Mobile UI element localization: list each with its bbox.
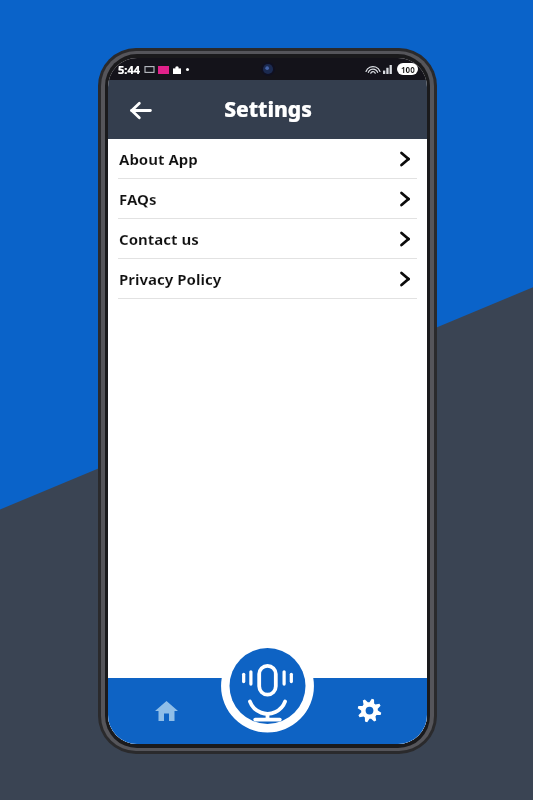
button[interactable]: About App [108, 139, 427, 179]
button[interactable]: Settings [347, 688, 391, 732]
button[interactable]: Privacy Policy [108, 259, 427, 299]
staticText: 5:44 [118, 62, 140, 77]
button[interactable]: Contact us [108, 219, 427, 259]
staticText: FAQs [119, 189, 157, 209]
button[interactable]: Home [144, 688, 188, 732]
staticText: 100 [401, 64, 415, 75]
staticText: Settings [224, 95, 312, 124]
staticText: Contact us [119, 229, 199, 249]
staticText: Privacy Policy [119, 269, 222, 289]
staticText: About App [119, 149, 198, 169]
button[interactable]: FAQs [108, 179, 427, 219]
button[interactable]: Back [118, 88, 162, 132]
